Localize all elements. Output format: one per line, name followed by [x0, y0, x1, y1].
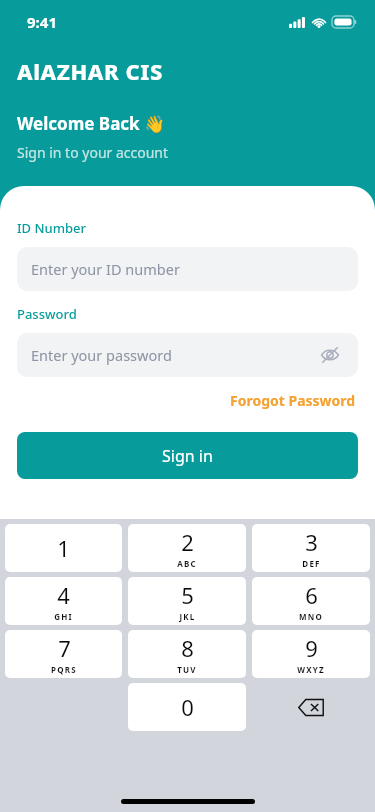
staticText: ID Number	[17, 219, 87, 237]
staticText: 2	[181, 527, 194, 557]
staticText: Welcome Back 👋	[17, 112, 166, 135]
button[interactable]: 3	[252, 524, 370, 572]
staticText: 3	[305, 527, 318, 557]
staticText: 9	[305, 633, 318, 663]
staticText: 7	[58, 633, 71, 663]
staticText: 0	[181, 692, 194, 722]
staticText: 4	[57, 580, 70, 610]
staticText: ABC	[177, 558, 197, 569]
staticText: WXYZ	[297, 664, 325, 675]
staticText: 1	[57, 533, 70, 563]
button[interactable]: 9	[252, 630, 370, 678]
staticText: Password	[17, 305, 77, 323]
button[interactable]: 7	[5, 630, 122, 678]
staticText: TUV	[177, 664, 197, 675]
staticText: 9:41	[27, 12, 57, 32]
staticText: Enter your password	[31, 345, 172, 365]
button[interactable]: 2	[128, 524, 246, 572]
staticText: JKL	[179, 611, 196, 622]
staticText: GHI	[54, 611, 73, 622]
staticText: Sign in to your account	[17, 143, 169, 162]
staticText: 8	[181, 633, 194, 663]
button[interactable]: Enter your ID number	[17, 247, 358, 291]
staticText: 6	[305, 580, 318, 610]
staticText: Enter your ID number	[31, 259, 180, 279]
button[interactable]: Backspace	[252, 683, 370, 731]
button[interactable]: Sign in	[17, 432, 358, 479]
button[interactable]: 6	[252, 577, 370, 625]
staticText: MNO	[299, 611, 323, 622]
button[interactable]: 1	[5, 524, 122, 572]
button[interactable]: 0	[128, 683, 246, 731]
staticText: 5	[181, 580, 194, 610]
button[interactable]: 5	[128, 577, 246, 625]
button[interactable]: Forogot Password	[228, 389, 358, 412]
staticText: Forogot Password	[230, 391, 356, 410]
staticText: Sign in	[162, 445, 213, 467]
button[interactable]: 4	[5, 577, 122, 625]
staticText: AlAZHAR CIS	[17, 56, 164, 86]
button[interactable]: Show password	[316, 341, 344, 369]
button[interactable]: 8	[128, 630, 246, 678]
button[interactable]: Enter your password	[17, 333, 358, 377]
staticText: PQRS	[51, 664, 77, 675]
staticText: DEF	[302, 558, 321, 569]
